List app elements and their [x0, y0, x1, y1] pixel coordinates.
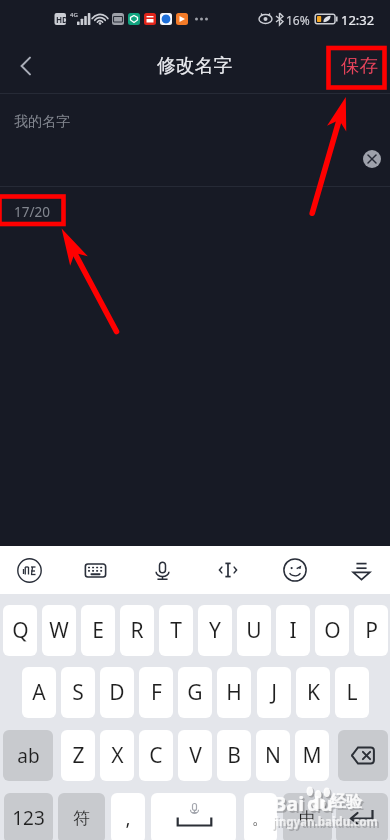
- button[interactable]: X: [100, 730, 134, 781]
- staticText: T: [170, 616, 182, 645]
- staticText: ab: [17, 743, 40, 769]
- staticText: 我的名字: [14, 113, 70, 131]
- button[interactable]: Space: [151, 793, 236, 840]
- button[interactable]: Hide keyboard: [338, 546, 384, 594]
- button[interactable]: Y: [198, 605, 232, 656]
- staticText: W: [49, 616, 69, 645]
- staticText: 经验: [330, 792, 362, 812]
- staticText: Q: [12, 616, 29, 645]
- staticText: 符: [73, 808, 90, 829]
- staticText: V: [189, 741, 202, 770]
- staticText: du: [307, 790, 333, 817]
- staticText: S: [72, 678, 84, 707]
- button[interactable]: F: [139, 667, 173, 718]
- button[interactable]: I: [276, 605, 310, 656]
- button[interactable]: N: [256, 730, 290, 781]
- staticText: N: [265, 741, 281, 770]
- button[interactable]: P: [354, 605, 388, 656]
- staticText: du: [309, 792, 335, 819]
- button[interactable]: E: [81, 605, 115, 656]
- staticText: I: [289, 616, 297, 645]
- button[interactable]: ,: [111, 793, 145, 840]
- button[interactable]: 中: [283, 793, 332, 840]
- button[interactable]: Clear text: [363, 150, 381, 168]
- button[interactable]: O: [315, 605, 349, 656]
- staticText: 保存: [341, 54, 378, 77]
- staticText: U: [246, 616, 262, 645]
- button[interactable]: Q: [3, 605, 37, 656]
- button[interactable]: W: [42, 605, 76, 656]
- staticText: D: [109, 678, 125, 707]
- staticText: 4G: [70, 11, 78, 19]
- staticText: 经验: [332, 794, 364, 814]
- staticText: J: [271, 678, 277, 707]
- button[interactable]: Move cursor: [205, 546, 251, 594]
- staticText: 16%: [286, 12, 310, 28]
- staticText: 123: [12, 805, 45, 831]
- button[interactable]: Keyboard layout: [72, 546, 118, 594]
- staticText: 17/20: [14, 203, 50, 221]
- staticText: HD: [56, 14, 68, 25]
- staticText: E: [92, 616, 104, 645]
- staticText: X: [111, 741, 124, 770]
- button[interactable]: R: [120, 605, 154, 656]
- button[interactable]: C: [139, 730, 173, 781]
- staticText: 。: [252, 808, 269, 829]
- button[interactable]: J: [257, 667, 291, 718]
- staticText: jingyan.baidu.com: [274, 816, 380, 832]
- button[interactable]: D: [100, 667, 134, 718]
- button[interactable]: K: [296, 667, 330, 718]
- button[interactable]: H: [217, 667, 251, 718]
- staticText: B: [227, 741, 241, 770]
- button[interactable]: U: [237, 605, 271, 656]
- staticText: F: [151, 678, 162, 707]
- button[interactable]: Enter: [336, 793, 388, 840]
- button[interactable]: S: [61, 667, 95, 718]
- staticText: H: [226, 678, 242, 707]
- staticText: C: [149, 741, 163, 770]
- staticText: K: [307, 678, 320, 707]
- button[interactable]: A: [22, 667, 56, 718]
- staticText: 修改名字: [157, 54, 233, 78]
- staticText: Bai: [275, 792, 307, 819]
- button[interactable]: Z: [61, 730, 95, 781]
- staticText: ,: [125, 805, 131, 831]
- button[interactable]: Voice input: [139, 546, 185, 594]
- button[interactable]: 。: [244, 793, 277, 840]
- staticText: G: [187, 678, 203, 707]
- button[interactable]: Emoji: [272, 546, 318, 594]
- button[interactable]: G: [178, 667, 212, 718]
- button[interactable]: V: [178, 730, 212, 781]
- button[interactable]: 符: [58, 793, 105, 840]
- button[interactable]: Input method: [6, 546, 52, 594]
- button[interactable]: M: [295, 730, 329, 781]
- button[interactable]: Back: [0, 40, 52, 92]
- staticText: A: [32, 678, 46, 707]
- staticText: Y: [209, 616, 221, 645]
- staticText: M: [302, 741, 322, 770]
- button[interactable]: 保存: [330, 44, 388, 86]
- button[interactable]: Backspace: [338, 730, 388, 781]
- button[interactable]: L: [335, 667, 369, 718]
- staticText: 中: [299, 808, 316, 829]
- staticText: Z: [72, 741, 85, 770]
- button[interactable]: B: [217, 730, 251, 781]
- staticText: O: [324, 616, 341, 645]
- button[interactable]: T: [159, 605, 193, 656]
- staticText: jingyan.baidu.com: [272, 814, 378, 830]
- staticText: P: [365, 616, 378, 645]
- button[interactable]: 123: [4, 793, 53, 840]
- button[interactable]: ab: [3, 730, 53, 781]
- staticText: L: [346, 678, 358, 707]
- staticText: R: [130, 616, 144, 645]
- staticText: 12:32: [341, 11, 375, 29]
- staticText: Bai: [273, 790, 305, 817]
